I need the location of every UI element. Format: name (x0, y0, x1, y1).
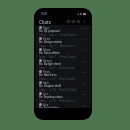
staticText: Lee (43, 92, 48, 95)
staticText: 9:41 (41, 12, 48, 16)
button[interactable]: Ana (35, 102, 91, 108)
staticText: Devon (43, 59, 52, 62)
button[interactable]: Maya (35, 47, 91, 58)
staticText: Ross (43, 26, 50, 29)
staticText: Sam (43, 81, 49, 84)
staticText: Re: Team offsite (39, 51, 60, 55)
staticText: 2:46 (82, 26, 87, 29)
staticText: 9:20 (82, 59, 87, 62)
staticText: Re: New hires (39, 73, 57, 77)
button[interactable]: More options (82, 19, 87, 24)
staticText: Inbox · Aug 1 · Front Quarter (39, 55, 77, 58)
staticText: Inbox · Jul 31 · Work Update (39, 77, 76, 80)
staticText: Re: Travel plans (39, 106, 60, 108)
staticText: Mon (81, 103, 87, 106)
staticText: Ana (43, 103, 49, 106)
staticText: Inbox · Jul 31 · Notes Group (39, 66, 75, 69)
staticText: Maya (43, 48, 51, 51)
button[interactable]: Sam (35, 80, 91, 91)
button[interactable]: Ross (35, 25, 91, 36)
staticText: Re: Q3 proposal (39, 29, 60, 33)
staticText: 1:12 (82, 37, 87, 40)
staticText: 1:03 (82, 48, 87, 51)
staticText: Priya (43, 70, 50, 73)
button[interactable]: Search (76, 19, 81, 24)
staticText: Re: Budget sheet (39, 62, 61, 66)
staticText: Re: Standup notes (39, 95, 63, 99)
staticText: Kiran (43, 37, 51, 40)
staticText: Inbox · Aug 2 · Front Quarter (39, 33, 77, 36)
staticText: Inbox · Jul 30 · Book Club Aug (39, 88, 78, 91)
staticText: Tue (82, 92, 87, 95)
staticText: Re: Chapter draft (39, 84, 62, 88)
staticText: Inbox · Aug 2 · Mass Line up (39, 44, 76, 47)
button[interactable]: New chat (71, 19, 76, 24)
button[interactable]: Meta AI (66, 19, 71, 24)
staticText: Tue (82, 81, 87, 84)
button[interactable]: Devon (35, 58, 91, 69)
staticText: Re: Design review (39, 40, 62, 44)
staticText: Chats (39, 19, 51, 25)
staticText: 8:02 (82, 70, 87, 73)
staticText: Inbox · Jul 30 · Daily Sync up (39, 99, 76, 102)
button[interactable]: Priya (35, 69, 91, 80)
button[interactable]: Lee (35, 91, 91, 102)
button[interactable]: Kiran (35, 36, 91, 47)
